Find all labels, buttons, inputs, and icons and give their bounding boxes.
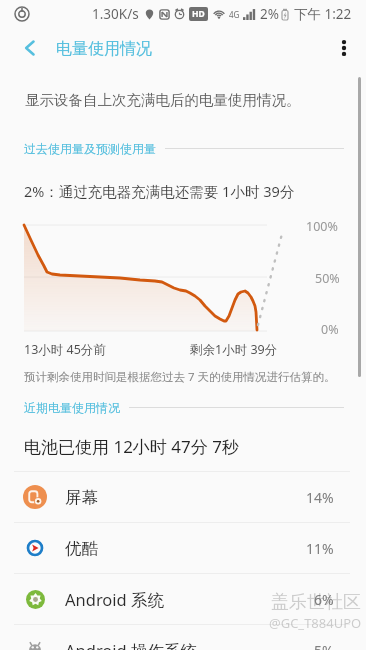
button[interactable]: 屏幕 bbox=[0, 472, 366, 522]
staticText: 盖乐世社区 bbox=[271, 591, 361, 614]
staticText: 屏幕 bbox=[65, 487, 98, 508]
staticText: 2%：通过充电器充满电还需要 1小时 39分 bbox=[24, 181, 295, 201]
button[interactable]: 优酷 bbox=[0, 523, 366, 573]
staticText: 剩余1小时 39分 bbox=[190, 341, 278, 358]
button[interactable]: Android 操作系统 bbox=[0, 625, 366, 650]
button[interactable]: Android 系统 bbox=[0, 574, 366, 624]
staticText: @GC_T884UPO bbox=[269, 614, 362, 632]
staticText: 4G bbox=[229, 9, 240, 20]
staticText: 电量使用情况 bbox=[56, 39, 152, 59]
staticText: 显示设备自上次充满电后的电量使用情况。 bbox=[25, 91, 301, 109]
staticText: 14% bbox=[306, 488, 334, 507]
staticText: 电池已使用 12小时 47分 7秒 bbox=[24, 435, 239, 458]
staticText: 0% bbox=[321, 321, 339, 338]
staticText: 优酷 bbox=[65, 538, 98, 559]
staticText: 2% bbox=[260, 5, 279, 23]
staticText: 下午 1:22 bbox=[294, 5, 352, 23]
staticText: 100% bbox=[306, 218, 338, 235]
staticText: Android 系统 bbox=[65, 588, 165, 611]
staticText: 近期电量使用情况 bbox=[24, 400, 120, 415]
staticText: Android 操作系统 bbox=[65, 639, 198, 650]
button[interactable]: More options bbox=[322, 28, 366, 68]
staticText: 50% bbox=[315, 270, 340, 287]
staticText: 11% bbox=[306, 539, 334, 558]
staticText: 预计剩余使用时间是根据您过去 7 天的使用情况进行估算的。 bbox=[24, 369, 336, 385]
staticText: 1.30K/s bbox=[92, 5, 139, 23]
staticText: 5% bbox=[314, 641, 334, 650]
staticText: HD bbox=[192, 8, 205, 20]
staticText: 13小时 45分前 bbox=[24, 341, 106, 358]
staticText: 6% bbox=[314, 590, 334, 609]
button[interactable]: Back bbox=[10, 28, 50, 68]
staticText: 过去使用量及预测使用量 bbox=[24, 141, 156, 156]
